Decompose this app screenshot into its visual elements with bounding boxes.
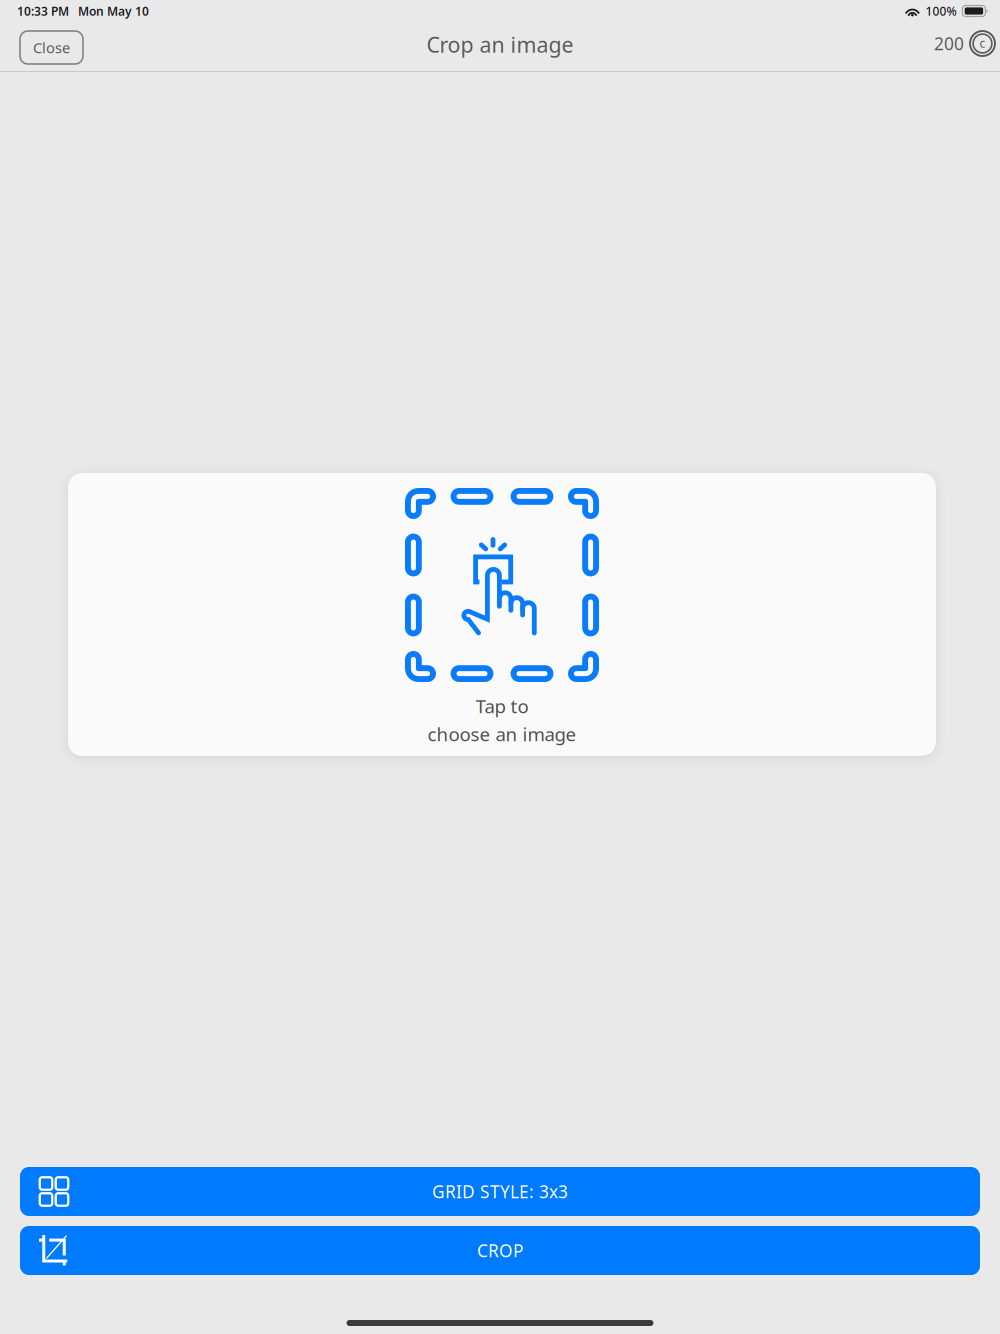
staticText: Mon May 10 [69,3,149,19]
staticText: c [979,35,985,51]
staticText: Close [33,38,70,57]
button[interactable]: 200 [934,34,995,59]
button[interactable]: CROP [20,1226,980,1275]
staticText: CROP [477,1239,523,1262]
button[interactable]: GRID STYLE: 3x3 [20,1167,980,1216]
button[interactable]: Close [20,30,83,63]
staticText: Crop an image [426,30,573,59]
staticText: Tap to [475,694,528,718]
staticText: 100% [919,3,962,19]
staticText: GRID STYLE: 3x3 [432,1180,568,1203]
staticText: 10:33 PM [17,3,69,19]
button[interactable]: Tap to [68,473,936,756]
staticText: choose an image [427,721,576,746]
staticText: 200 [934,32,964,55]
